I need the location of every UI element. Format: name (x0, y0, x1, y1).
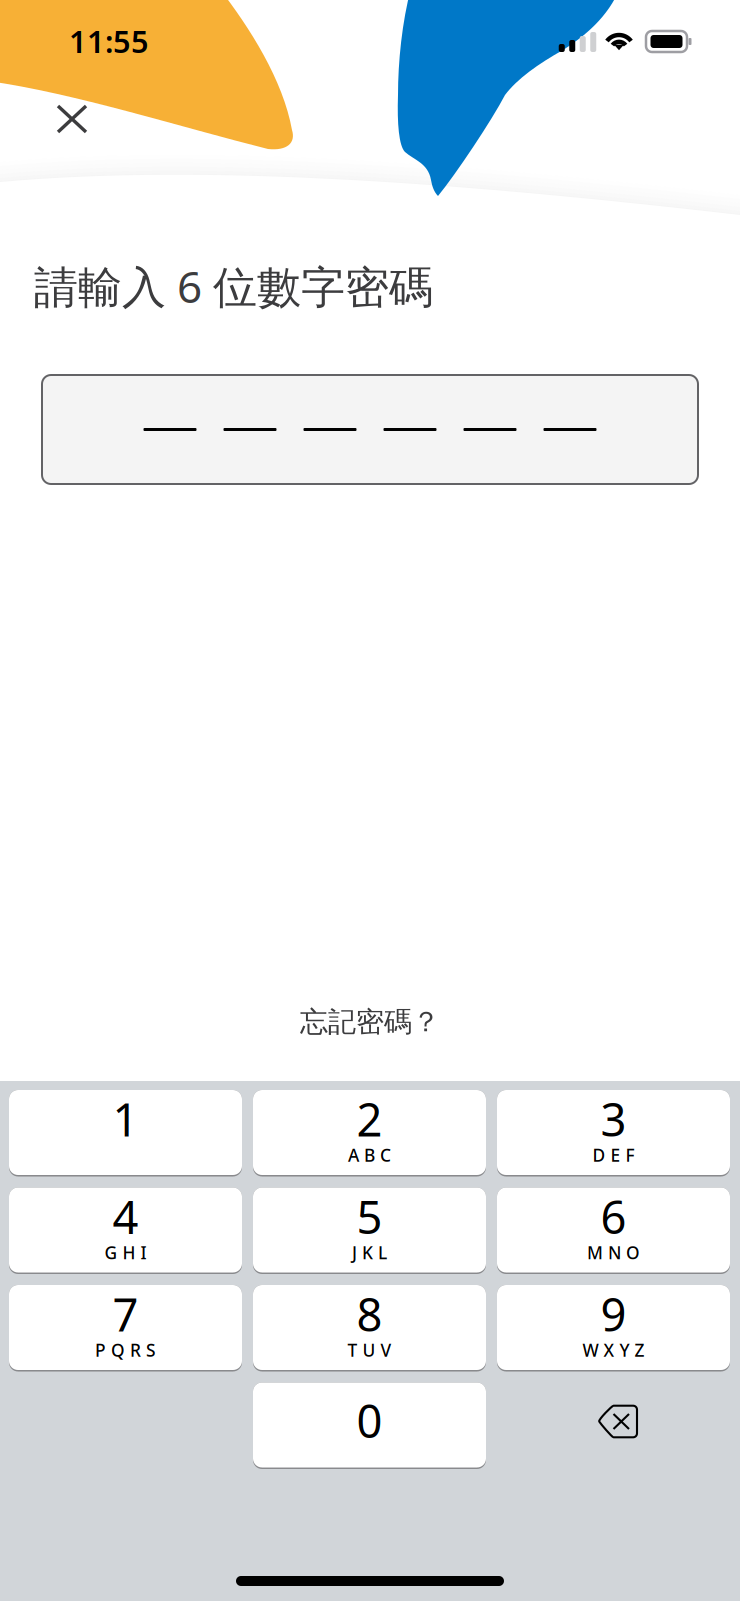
staticText: 0 (356, 1390, 382, 1451)
staticText: W X Y Z (582, 1338, 644, 1361)
staticText: P Q R S (95, 1338, 156, 1361)
staticText: 11:55 (69, 21, 149, 61)
button[interactable]: 忘記密碼？ (220, 1000, 520, 1044)
staticText: 2 (356, 1089, 382, 1149)
staticText: G H I (104, 1241, 146, 1264)
staticText: J K L (352, 1241, 387, 1264)
staticText: 3 (600, 1089, 626, 1149)
button[interactable]: 4 (9, 1187, 242, 1274)
staticText: 8 (356, 1284, 382, 1344)
staticText: 請輸入 6 位數字密碼 (34, 257, 433, 315)
staticText: 6 (600, 1186, 626, 1247)
staticText: 5 (356, 1186, 382, 1247)
button[interactable]: 7 (9, 1285, 242, 1371)
staticText: M N O (587, 1241, 640, 1264)
button[interactable]: 8 (253, 1285, 486, 1371)
button[interactable]: 5 (253, 1187, 486, 1274)
staticText: 1 (112, 1089, 138, 1149)
button[interactable]: 2 (253, 1090, 486, 1176)
staticText: 4 (112, 1186, 138, 1247)
button[interactable]: Close (36, 83, 108, 155)
button[interactable]: 1 (9, 1090, 242, 1176)
button[interactable]: 6 (497, 1187, 730, 1274)
button[interactable]: 0 (253, 1382, 486, 1469)
staticText: 9 (600, 1284, 626, 1344)
button[interactable]: Delete (497, 1382, 730, 1469)
staticText: 7 (112, 1284, 138, 1344)
staticText: T U V (347, 1338, 391, 1361)
button[interactable]: 9 (497, 1285, 730, 1371)
staticText: 忘記密碼？ (300, 1005, 440, 1039)
staticText: A B C (348, 1143, 391, 1166)
button[interactable]: 3 (497, 1090, 730, 1176)
staticText: D E F (592, 1143, 634, 1166)
